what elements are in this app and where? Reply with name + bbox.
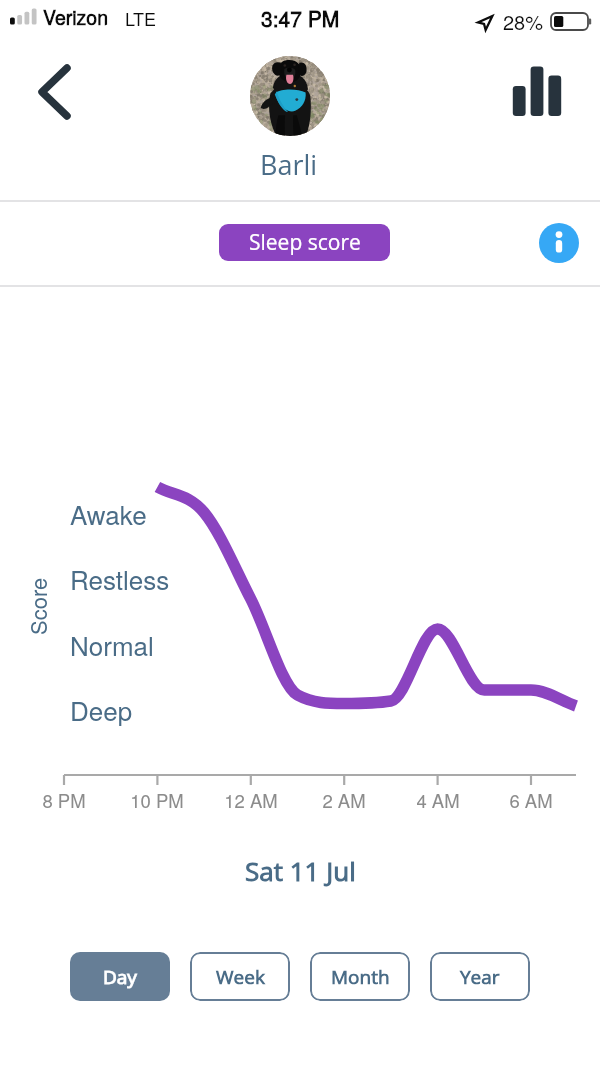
staticText: 4 AM <box>416 787 460 813</box>
button[interactable]: Pet photo <box>250 56 330 136</box>
button[interactable]: Info <box>534 218 584 268</box>
button[interactable]: Day <box>70 952 170 1001</box>
staticText: 10 PM <box>130 787 184 813</box>
staticText: Year <box>460 964 500 990</box>
staticText: Sat 11 Jul <box>245 853 356 888</box>
staticText: 12 AM <box>224 787 278 813</box>
button[interactable]: Sleep score <box>219 224 390 261</box>
staticText: Barli <box>260 146 318 183</box>
staticText: Normal <box>70 626 154 663</box>
button[interactable]: Back <box>24 62 84 122</box>
staticText: 2 AM <box>322 787 366 813</box>
staticText: 3:47 PM <box>261 3 340 33</box>
staticText: 28% <box>503 7 544 36</box>
button[interactable]: Year <box>430 952 530 1001</box>
staticText: Awake <box>70 495 147 532</box>
button[interactable]: Month <box>310 952 410 1001</box>
button[interactable]: Week <box>190 952 290 1001</box>
staticText: LTE <box>125 5 157 31</box>
staticText: Deep <box>70 691 133 728</box>
staticText: Sleep score <box>249 228 361 257</box>
staticText: Day <box>103 964 137 990</box>
staticText: Week <box>216 964 265 990</box>
staticText: Restless <box>70 560 170 597</box>
staticText: Verizon <box>43 3 109 31</box>
staticText: Score <box>22 577 54 635</box>
staticText: 6 AM <box>509 787 553 813</box>
button[interactable]: Statistics <box>497 58 577 124</box>
staticText: Month <box>331 964 390 990</box>
staticText: 8 PM <box>42 787 86 813</box>
